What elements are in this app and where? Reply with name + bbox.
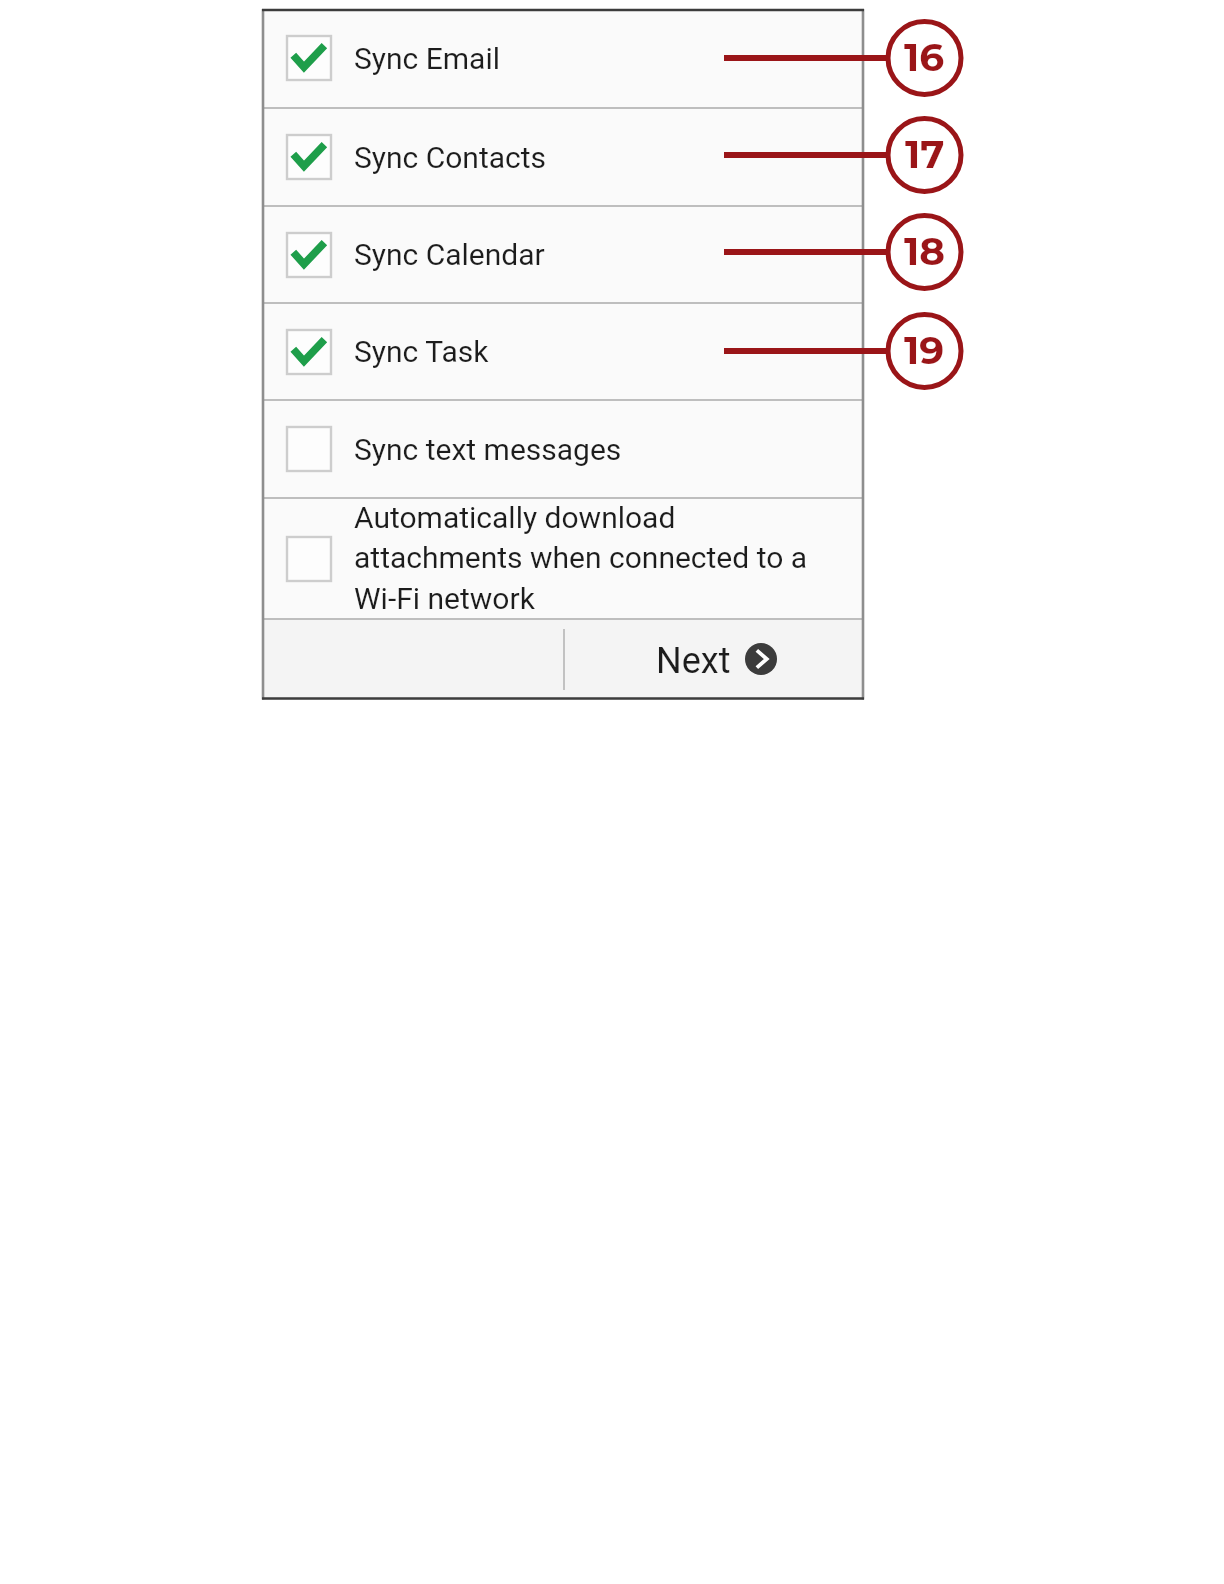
- staticText: 16: [904, 33, 945, 81]
- button[interactable]: Sync Contacts: [263, 109, 863, 205]
- staticText: Next: [656, 640, 731, 682]
- button[interactable]: Sync Task: [263, 304, 863, 399]
- other: Next: [745, 643, 777, 675]
- staticText: Sync Contacts: [354, 140, 824, 175]
- staticText: 18: [904, 227, 946, 275]
- button[interactable]: Sync text messages: [263, 401, 863, 497]
- staticText: 17: [905, 130, 945, 178]
- staticText: Automatically download attachments when …: [354, 500, 824, 617]
- button[interactable]: Sync Email: [263, 9, 863, 107]
- button[interactable]: Next: [656, 640, 777, 682]
- staticText: Sync Calendar: [354, 237, 824, 272]
- staticText: Sync Task: [354, 334, 824, 369]
- button[interactable]: Automatically download attachments when …: [263, 499, 863, 618]
- staticText: 19: [904, 326, 945, 374]
- button[interactable]: Sync Calendar: [263, 207, 863, 302]
- staticText: Sync text messages: [354, 432, 824, 467]
- staticText: Sync Email: [354, 41, 824, 76]
